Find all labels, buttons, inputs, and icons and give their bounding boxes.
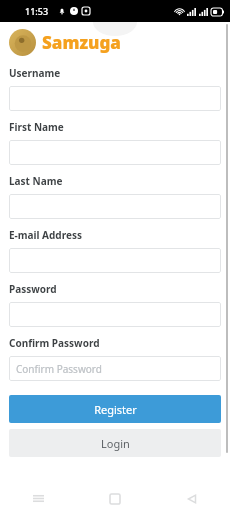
staticText: E-mail Address xyxy=(9,228,82,242)
staticText: Confirm Password xyxy=(16,362,102,376)
staticText: 11:53 xyxy=(25,5,49,17)
staticText: Password xyxy=(9,282,57,296)
button[interactable]: Recent apps xyxy=(0,485,76,512)
staticText: Samzuga xyxy=(42,31,121,54)
button[interactable]: Samzuga xyxy=(9,29,121,56)
button[interactable]: Login xyxy=(9,429,221,457)
button[interactable] xyxy=(9,140,221,165)
staticText: Confirm Password xyxy=(9,336,100,350)
button[interactable]: Confirm Password xyxy=(9,356,221,381)
button[interactable]: Home xyxy=(76,485,153,512)
staticText: Login xyxy=(101,436,130,451)
button[interactable] xyxy=(9,302,221,327)
button[interactable] xyxy=(9,248,221,273)
staticText: Last Name xyxy=(9,174,63,188)
staticText: First Name xyxy=(9,120,64,134)
button[interactable] xyxy=(9,86,221,111)
button[interactable]: Back xyxy=(153,485,230,512)
staticText: Register xyxy=(94,402,137,417)
button[interactable]: Register xyxy=(9,395,221,423)
staticText: Username xyxy=(9,66,61,80)
button[interactable] xyxy=(9,194,221,219)
